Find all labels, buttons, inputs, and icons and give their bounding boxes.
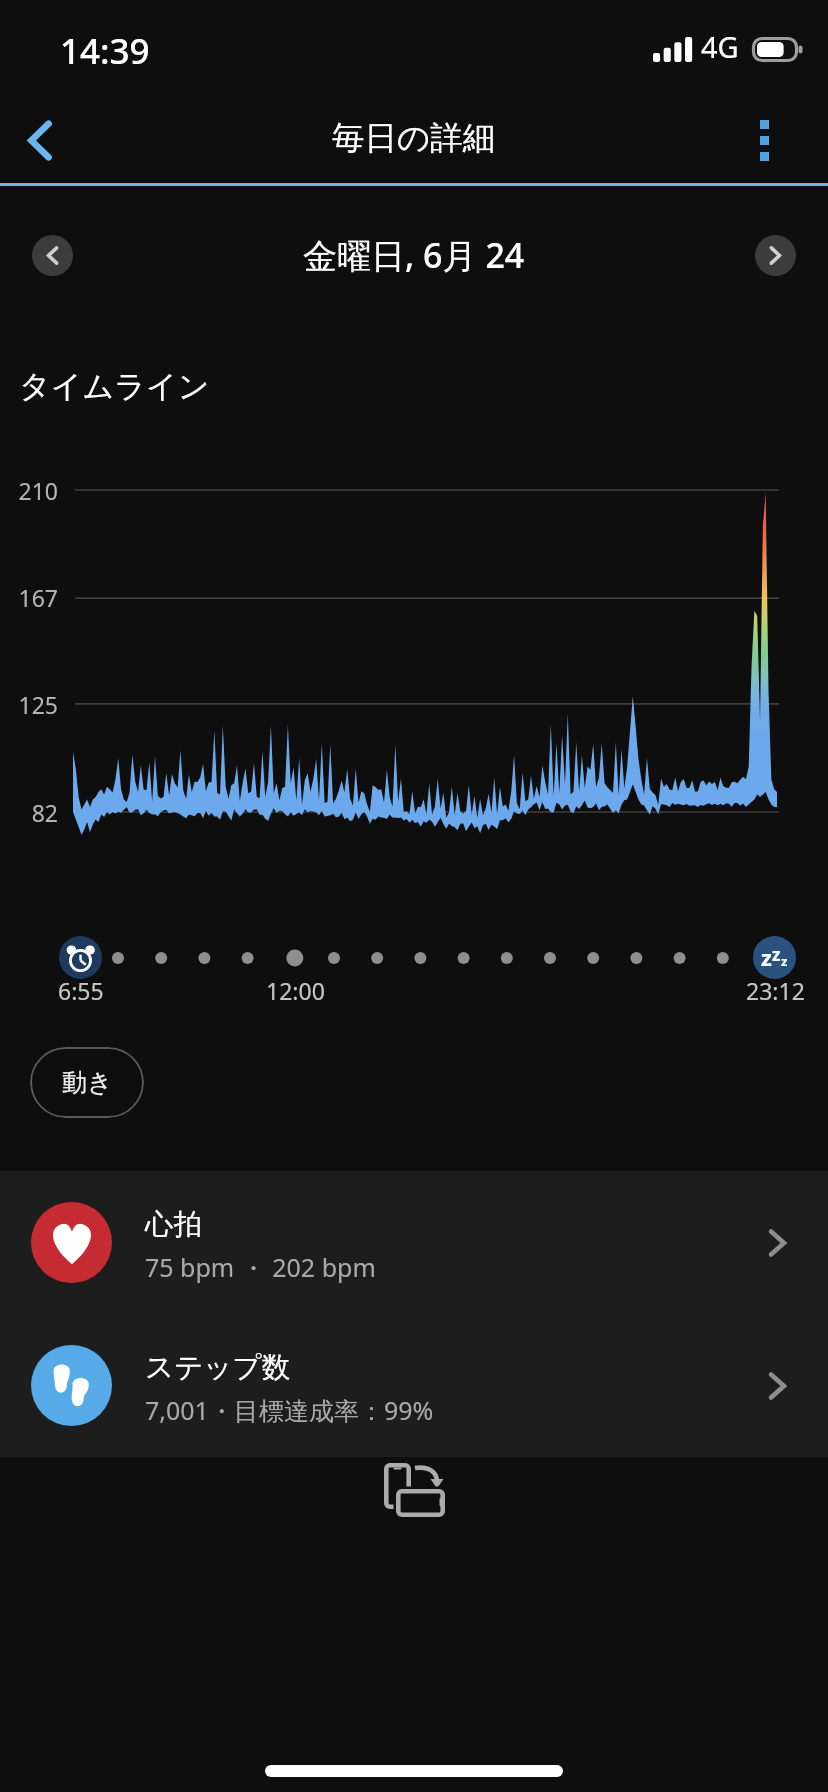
staticText: 動き [62, 1067, 113, 1098]
staticText: 14:39 [60, 27, 150, 75]
staticText: ステップ数 [145, 1350, 291, 1386]
staticText: 75 bpm ・ 202 bpm [145, 1250, 376, 1284]
staticText: 167 [18, 582, 58, 613]
staticText: z [781, 952, 788, 970]
button[interactable]: Back [4, 104, 76, 176]
button[interactable]: Next day [755, 235, 796, 276]
staticText: 毎日の詳細 [332, 118, 496, 159]
staticText: 210 [18, 475, 58, 506]
button[interactable]: Previous day [32, 235, 73, 276]
button[interactable]: More options [728, 104, 800, 176]
staticText: 82 [31, 797, 58, 828]
staticText: 心拍 [145, 1207, 202, 1243]
button[interactable]: Sleep time 23:12 [753, 936, 796, 979]
staticText: 4G [701, 27, 739, 66]
staticText: 金曜日, 6月 24 [303, 232, 525, 278]
staticText: 125 [18, 689, 58, 720]
staticText: 6:55 [58, 975, 104, 1006]
button[interactable]: Wake time 6:55 [59, 936, 102, 979]
staticText: 12:00 [266, 975, 325, 1006]
staticText: タイムライン [19, 367, 210, 406]
staticText: z [761, 942, 772, 972]
staticText: 23:12 [746, 975, 805, 1006]
staticText: 7,001・目標達成率：99% [145, 1393, 434, 1427]
staticText: z [772, 943, 781, 966]
button[interactable]: ステップ数 [0, 1314, 828, 1457]
button[interactable]: 心拍 [0, 1171, 828, 1314]
button[interactable]: Rotate screen [371, 1450, 458, 1530]
button[interactable]: 動き [30, 1047, 144, 1118]
